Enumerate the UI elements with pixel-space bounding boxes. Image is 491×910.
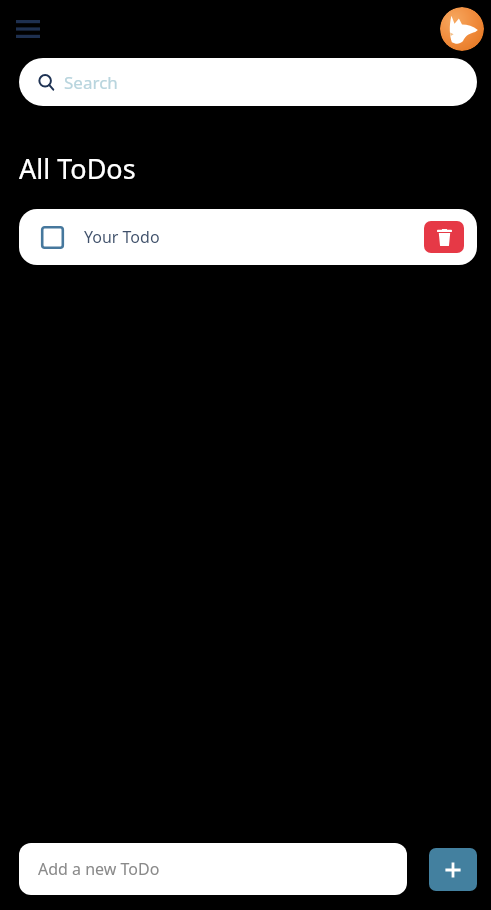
button[interactable]: Add todo bbox=[429, 848, 477, 891]
staticText: Your Todo bbox=[84, 226, 424, 248]
button[interactable]: Delete todo bbox=[424, 221, 464, 253]
button[interactable]: Mark todo complete bbox=[39, 224, 65, 250]
button[interactable]: Open navigation menu bbox=[9, 10, 47, 48]
button[interactable]: Add a new ToDo bbox=[19, 843, 407, 895]
staticText: Search bbox=[64, 71, 118, 94]
button[interactable]: Search bbox=[19, 58, 477, 106]
staticText: All ToDos bbox=[19, 150, 136, 187]
button[interactable]: Mark todo complete bbox=[19, 209, 477, 265]
staticText: Add a new ToDo bbox=[38, 858, 160, 880]
button[interactable]: Profile bbox=[440, 7, 484, 51]
